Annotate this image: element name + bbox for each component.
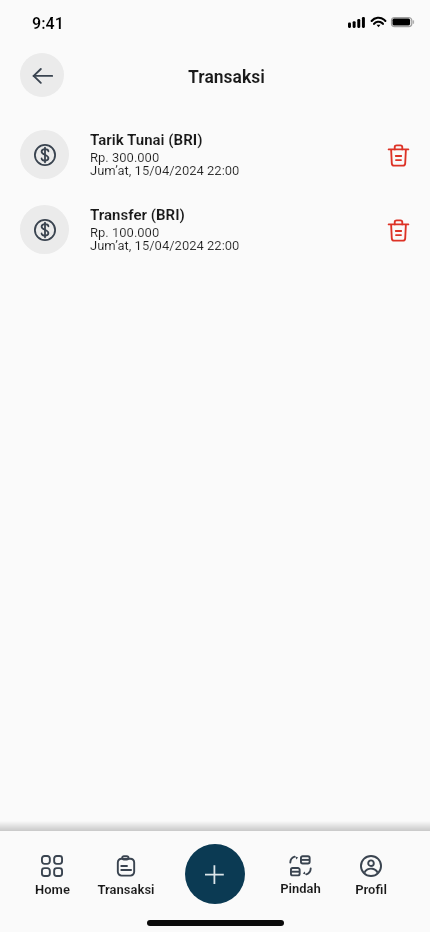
button[interactable]: Home bbox=[12, 852, 92, 900]
staticText: Transfer (BRI) bbox=[90, 206, 185, 224]
staticText: Rp. 100.000 bbox=[90, 225, 160, 240]
button[interactable]: Hapus bbox=[378, 135, 418, 175]
button[interactable]: Hapus bbox=[378, 210, 418, 250]
staticText: 9:41 bbox=[32, 14, 64, 33]
staticText: Jum’at, 15/04/2024 22:00 bbox=[90, 238, 240, 253]
button[interactable]: Pindah bbox=[260, 852, 340, 899]
staticText: Rp. 300.000 bbox=[90, 150, 160, 165]
button[interactable]: Tambah bbox=[185, 844, 245, 904]
button[interactable]: Transaksi bbox=[86, 852, 166, 900]
staticText: Transaksi bbox=[188, 67, 265, 88]
staticText: Pindah bbox=[280, 881, 321, 896]
staticText: Transaksi bbox=[97, 882, 155, 897]
button[interactable]: Profil bbox=[331, 852, 411, 900]
button[interactable]: Transfer (BRI) bbox=[0, 192, 430, 267]
staticText: Tarik Tunai (BRI) bbox=[90, 131, 203, 149]
button[interactable]: Tarik Tunai (BRI) bbox=[0, 117, 430, 192]
staticText: Jum’at, 15/04/2024 22:00 bbox=[90, 163, 240, 178]
staticText: Home bbox=[35, 882, 70, 897]
staticText: Profil bbox=[355, 882, 387, 897]
button[interactable]: Back bbox=[20, 53, 64, 97]
